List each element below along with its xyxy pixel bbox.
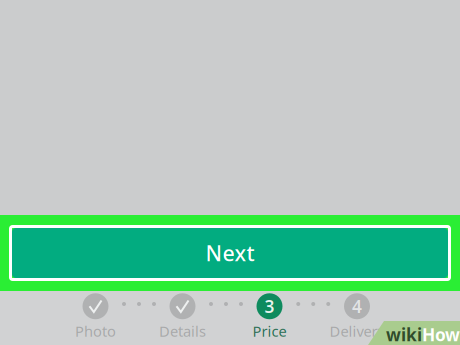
button[interactable]: 4 [317,293,397,341]
staticText: How [422,323,460,345]
staticText: Next [205,239,254,267]
button[interactable]: Details [142,293,222,341]
staticText: Delivery [329,321,384,341]
button[interactable]: Next [12,228,448,278]
staticText: Price [252,321,286,341]
staticText: wiki [386,323,422,345]
staticText: Photo [75,321,116,341]
button[interactable]: Photo [55,293,135,341]
button[interactable]: 3 [229,293,309,341]
staticText: 3 [264,295,274,318]
staticText: 4 [352,295,362,318]
staticText: Details [159,321,206,341]
